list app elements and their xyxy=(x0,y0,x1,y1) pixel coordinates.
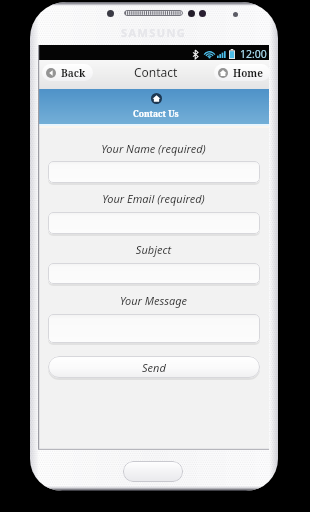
staticText: Send xyxy=(142,360,166,375)
button[interactable]: Contact Us xyxy=(38,89,269,124)
staticText: 12:00 xyxy=(240,47,267,61)
button[interactable] xyxy=(48,314,260,343)
button[interactable]: Send xyxy=(48,356,260,378)
staticText: Back xyxy=(61,66,86,80)
staticText: Your Email (required) xyxy=(38,191,269,206)
staticText: Subject xyxy=(38,242,269,257)
staticText: Contact xyxy=(134,64,178,80)
button[interactable] xyxy=(48,161,260,183)
staticText: Home xyxy=(233,66,263,80)
staticText: Your Name (required) xyxy=(38,141,269,156)
staticText: Your Message xyxy=(38,293,269,308)
button[interactable]: Home button xyxy=(123,461,183,482)
button[interactable] xyxy=(48,212,260,234)
staticText: SAMSUNG xyxy=(121,25,187,40)
button[interactable]: Back xyxy=(42,64,93,81)
staticText: Contact Us xyxy=(133,108,179,120)
button[interactable]: Home xyxy=(214,64,270,81)
button[interactable] xyxy=(48,263,260,284)
